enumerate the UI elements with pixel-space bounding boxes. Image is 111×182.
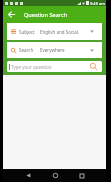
button[interactable]: Home [48, 169, 62, 182]
staticText: English and Social. [40, 29, 80, 35]
staticText: Everywhere [40, 47, 65, 53]
button[interactable]: Back [21, 169, 35, 182]
staticText: Type your question [11, 64, 52, 70]
staticText: Subject [19, 29, 35, 35]
staticText: 9:46 am [90, 1, 105, 6]
staticText: Question Search [24, 11, 68, 19]
button[interactable]: Type your question [7, 61, 102, 72]
button[interactable]: Recent apps [75, 169, 89, 182]
button[interactable]: Subject [7, 23, 102, 40]
button[interactable]: Navigate up [3, 6, 20, 23]
staticText: Search [19, 47, 34, 53]
button[interactable]: Search [7, 42, 102, 58]
